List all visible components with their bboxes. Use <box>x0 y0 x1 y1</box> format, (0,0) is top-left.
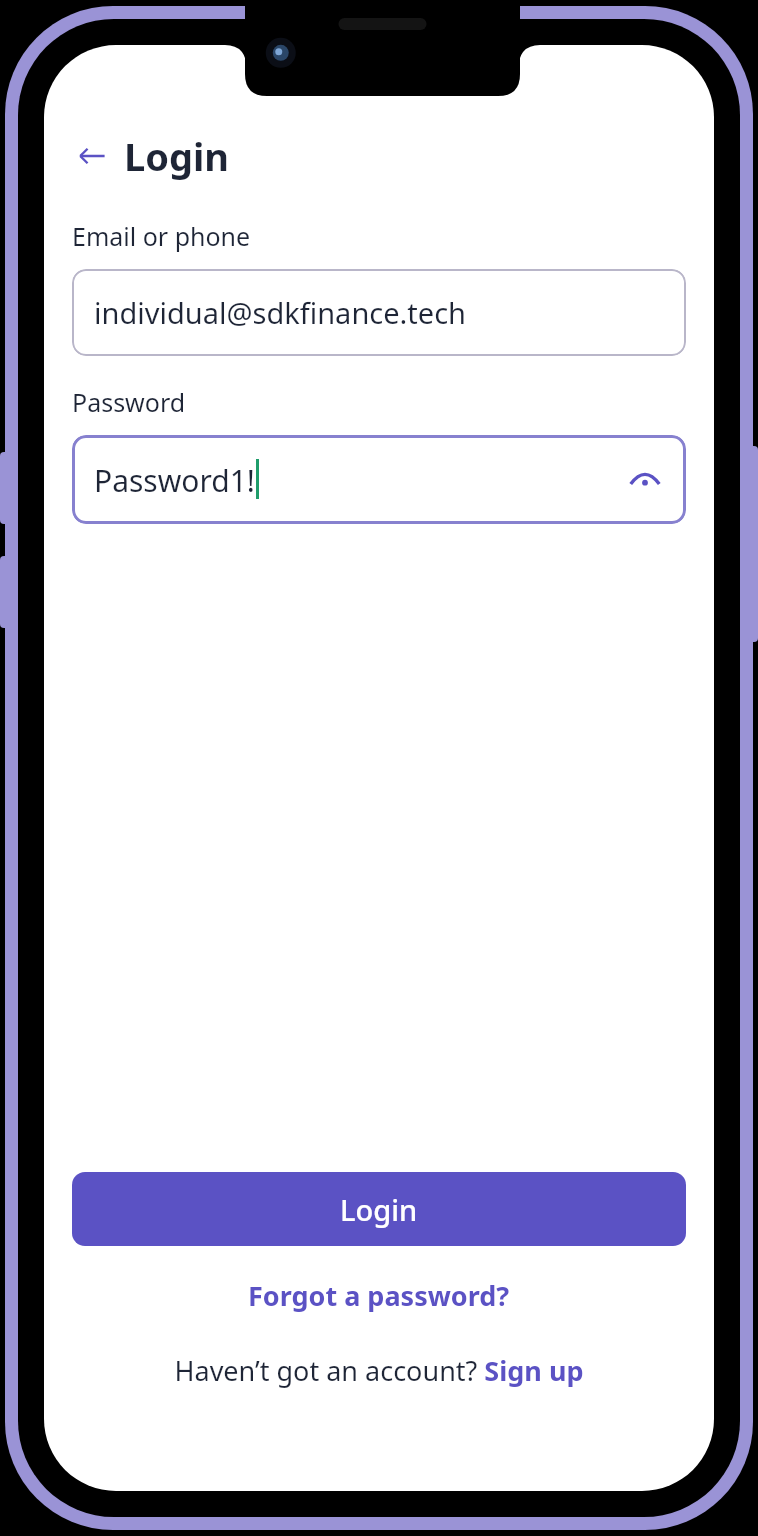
button[interactable]: Password1! <box>72 435 686 524</box>
staticText: Login <box>340 1190 418 1229</box>
button[interactable]: Forgot a password? <box>232 1269 526 1322</box>
button[interactable]: Haven’t got an account? Sign up <box>162 1346 596 1395</box>
staticText: Login <box>124 130 230 182</box>
button[interactable]: Login <box>72 1172 686 1246</box>
staticText: Forgot a password? <box>248 1277 510 1314</box>
button[interactable]: Hide password <box>618 453 672 507</box>
staticText: individual@sdkfinance.tech <box>94 293 467 332</box>
button[interactable]: individual@sdkfinance.tech <box>72 269 686 356</box>
staticText: Haven’t got an account? Sign up <box>174 1352 584 1389</box>
button[interactable]: Back <box>72 130 230 182</box>
staticText: Password <box>72 385 186 419</box>
button[interactable]: Back <box>72 136 112 176</box>
staticText: Email or phone <box>72 219 251 253</box>
staticText: Password1! <box>94 460 255 501</box>
